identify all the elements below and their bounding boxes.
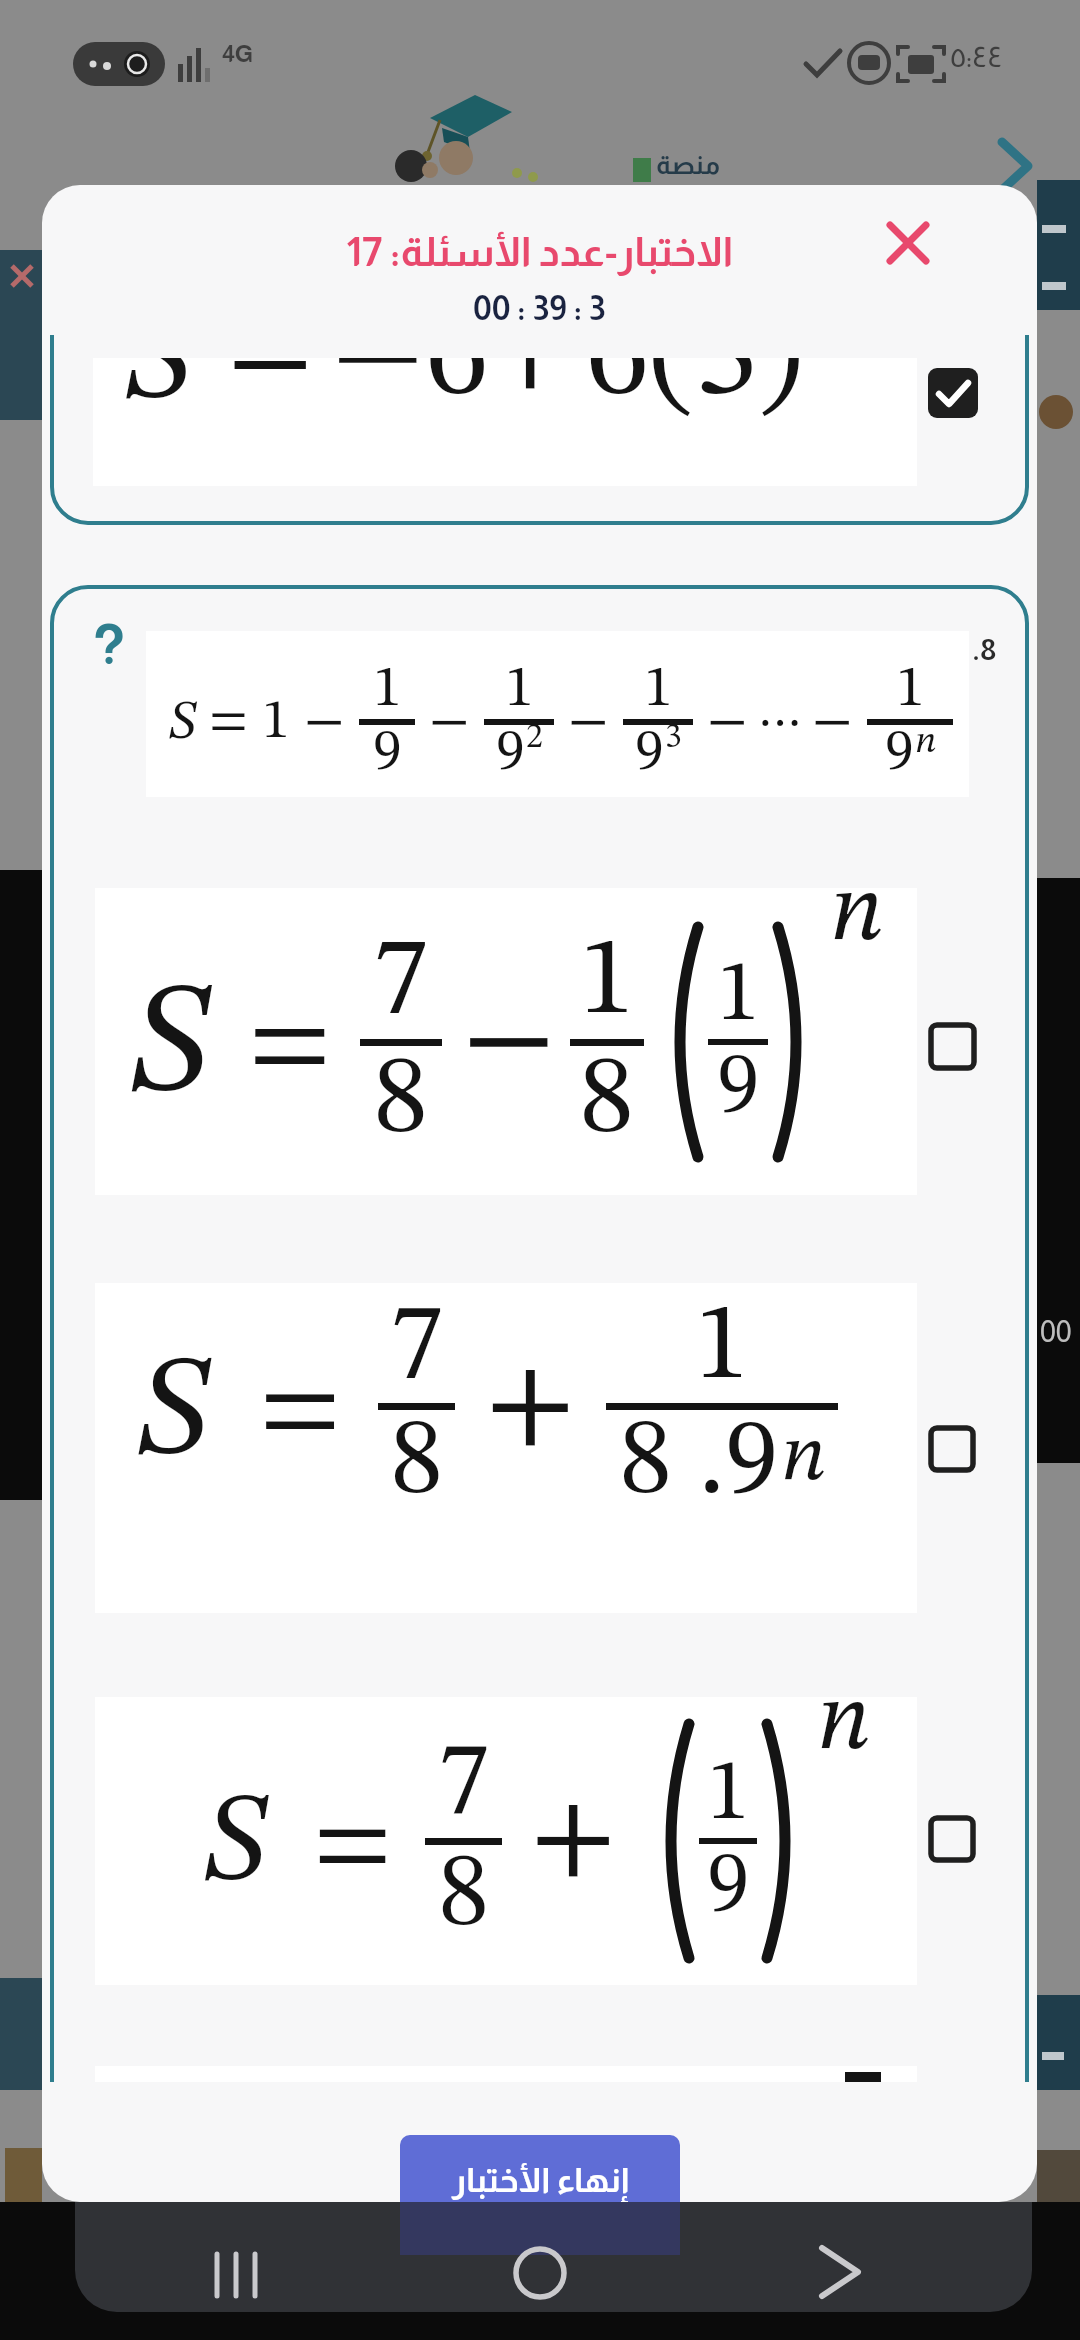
staticText: ٥:٤٤ <box>950 40 1003 73</box>
staticText: ? <box>92 613 126 675</box>
button[interactable]: S <box>95 1697 917 1985</box>
button[interactable] <box>798 2238 868 2308</box>
staticText: 1 <box>373 661 402 719</box>
staticText: = <box>313 1790 393 1900</box>
staticText: + <box>530 1781 617 1901</box>
staticText: = <box>227 358 314 411</box>
staticText: − <box>568 694 609 750</box>
staticText: 00 <box>1040 1315 1072 1348</box>
staticText: . <box>673 1410 725 1518</box>
staticText: 1 <box>644 661 673 719</box>
staticText: 9 <box>885 725 914 783</box>
staticText: 4G <box>222 40 254 67</box>
staticText: 1 <box>707 1752 750 1838</box>
staticText: 8 <box>438 1845 490 1949</box>
button[interactable]: S <box>95 888 917 1195</box>
staticText: S <box>135 1344 211 1486</box>
button[interactable] <box>928 368 978 418</box>
staticText: n <box>781 1418 827 1498</box>
staticText: 2 <box>526 721 543 755</box>
staticText: 9 <box>373 725 402 783</box>
staticText: 9 <box>717 1045 760 1131</box>
staticText: − <box>462 977 556 1107</box>
staticText: + <box>485 1344 576 1470</box>
staticText: = <box>248 988 332 1104</box>
staticText: n <box>817 1676 871 1771</box>
button[interactable] <box>928 1425 976 1473</box>
staticText: 3 <box>665 721 682 755</box>
staticText: n <box>830 867 884 962</box>
staticText: 7 <box>438 1734 490 1838</box>
staticText: S <box>168 697 197 751</box>
staticText: 9 <box>635 725 664 783</box>
staticText: 8 <box>390 1410 444 1518</box>
staticText: 8 <box>579 1046 635 1158</box>
staticText: 1 <box>717 953 760 1039</box>
staticText: 9 <box>496 725 525 783</box>
staticText: الاختبار-عدد الأسئلة: 17 <box>346 230 734 275</box>
staticText: 9 <box>725 1410 779 1518</box>
staticText: 8 <box>619 1410 673 1518</box>
button[interactable] <box>205 2240 275 2310</box>
staticText: − <box>429 694 470 750</box>
staticText: 1 <box>262 694 290 750</box>
staticText: ‎00 : 39 : 3 <box>473 289 606 327</box>
staticText: − <box>812 694 853 750</box>
staticText: 7 <box>390 1295 444 1403</box>
staticText: −6 <box>331 358 489 421</box>
staticText: 1 <box>695 1295 749 1403</box>
staticText: + <box>487 358 574 413</box>
staticText: S <box>123 358 194 423</box>
staticText: 9 <box>707 1844 750 1930</box>
staticText: منصة <box>656 150 721 179</box>
staticText: = <box>259 1354 342 1468</box>
staticText: 1 <box>896 661 925 719</box>
button[interactable]: إنهاء الأختبار <box>400 2135 680 2202</box>
button[interactable] <box>880 215 936 271</box>
staticText: ··· <box>758 696 802 748</box>
staticText: − <box>707 694 748 750</box>
staticText: = <box>209 695 248 749</box>
staticText: − <box>304 694 345 750</box>
staticText: 1 <box>505 661 534 719</box>
button[interactable] <box>505 2238 575 2308</box>
staticText: S <box>128 970 212 1126</box>
button[interactable] <box>928 1022 977 1071</box>
staticText: إنهاء الأختبار <box>452 2161 629 2199</box>
staticText: 1 <box>579 927 635 1039</box>
staticText: .8 <box>972 633 997 666</box>
staticText: 8 <box>373 1046 429 1158</box>
button[interactable]: S <box>95 1283 917 1613</box>
staticText: n <box>915 723 937 761</box>
button[interactable] <box>928 1815 976 1863</box>
staticText: 6(3) <box>585 358 803 421</box>
staticText: S <box>202 1785 269 1909</box>
staticText: 7 <box>373 927 429 1039</box>
